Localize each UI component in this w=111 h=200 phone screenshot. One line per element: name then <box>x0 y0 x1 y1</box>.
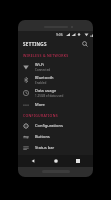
button[interactable]: Configurations <box>18 120 93 131</box>
staticText: 1.25GB of data used <box>35 94 64 98</box>
button[interactable]: Home <box>48 155 64 167</box>
staticText: WIRELESS & NETWORKS <box>23 53 69 58</box>
staticText: CONFIGURATIONS <box>23 113 58 118</box>
staticText: Wi-Fi <box>35 62 45 67</box>
button[interactable]: Back <box>25 155 41 167</box>
staticText: Enabled <box>35 81 47 85</box>
staticText: Buttons <box>35 134 50 139</box>
staticText: Bluetooth <box>35 75 54 80</box>
staticText: Status bar <box>35 145 55 150</box>
staticText: More <box>35 102 45 107</box>
button[interactable]: More <box>18 99 93 110</box>
staticText: 9:06 <box>56 32 63 37</box>
button[interactable]: Wi-Fi <box>18 60 93 73</box>
button[interactable]: Recent apps <box>70 155 86 167</box>
button[interactable]: Data usage <box>18 86 93 99</box>
staticText: Configurations <box>35 123 63 128</box>
button[interactable]: Search <box>80 39 90 49</box>
button[interactable]: Buttons <box>18 131 93 142</box>
staticText: SETTINGS <box>23 41 47 47</box>
staticText: Connected <box>35 68 51 72</box>
button[interactable]: Bluetooth <box>18 73 93 86</box>
staticText: Data usage <box>35 88 57 93</box>
button[interactable]: Status bar <box>18 142 93 153</box>
